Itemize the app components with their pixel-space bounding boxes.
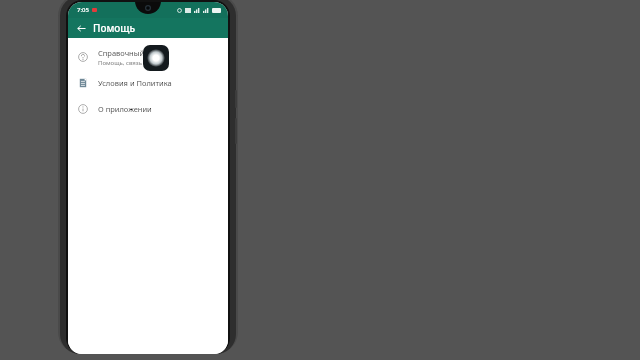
staticText: Условия и Политика <box>98 78 172 88</box>
button[interactable]: Back <box>73 20 89 36</box>
button[interactable]: О приложении <box>68 96 228 122</box>
button[interactable]: Условия и Политика <box>68 70 228 96</box>
staticText: Помощь <box>93 21 136 35</box>
staticText: 7:05 <box>77 6 89 14</box>
button[interactable]: Справочный центр <box>68 44 228 70</box>
staticText: Помощь, связь с нами <box>98 59 164 67</box>
staticText: О приложении <box>98 104 152 114</box>
staticText: Справочный центр <box>98 48 168 58</box>
